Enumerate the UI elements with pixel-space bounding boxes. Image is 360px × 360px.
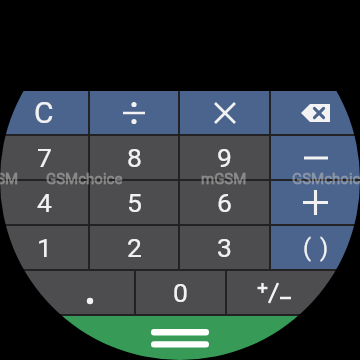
button[interactable]: 7 <box>0 136 88 179</box>
button[interactable]: 3 <box>180 226 269 269</box>
button[interactable]: 2 <box>90 226 178 269</box>
staticText: 7 <box>37 142 52 173</box>
button[interactable]: 4 <box>0 181 88 224</box>
button[interactable]: 1 <box>0 226 88 269</box>
staticText: GSMchoice <box>46 170 123 188</box>
button[interactable]: 5 <box>90 181 178 224</box>
staticText: ) <box>320 234 329 262</box>
staticText: 8 <box>127 142 142 173</box>
staticText: 5 <box>127 187 142 218</box>
staticText: mGSM <box>201 170 247 188</box>
button[interactable] <box>227 271 360 314</box>
button[interactable] <box>271 136 360 179</box>
staticText: 1 <box>37 232 52 263</box>
button[interactable] <box>90 91 178 134</box>
button[interactable]: 0 <box>136 271 225 314</box>
staticText: GSM <box>0 170 19 188</box>
button[interactable]: 9 <box>180 136 269 179</box>
staticText: ( <box>303 234 312 262</box>
staticText: 9 <box>217 142 232 173</box>
staticText: 4 <box>37 187 52 218</box>
button[interactable]: 8 <box>90 136 178 179</box>
staticText: 2 <box>127 232 142 263</box>
button[interactable] <box>271 181 360 224</box>
staticText: GSMchoic <box>292 170 360 188</box>
staticText: 6 <box>217 187 232 218</box>
staticText: 3 <box>217 232 232 263</box>
button[interactable] <box>271 91 360 134</box>
button[interactable] <box>0 316 360 360</box>
button[interactable]: ( <box>271 226 360 269</box>
button[interactable] <box>0 271 134 314</box>
staticText: C <box>34 95 54 130</box>
button[interactable] <box>180 91 269 134</box>
button[interactable]: 6 <box>180 181 269 224</box>
button[interactable]: C <box>0 91 88 134</box>
staticText: 0 <box>173 277 188 308</box>
